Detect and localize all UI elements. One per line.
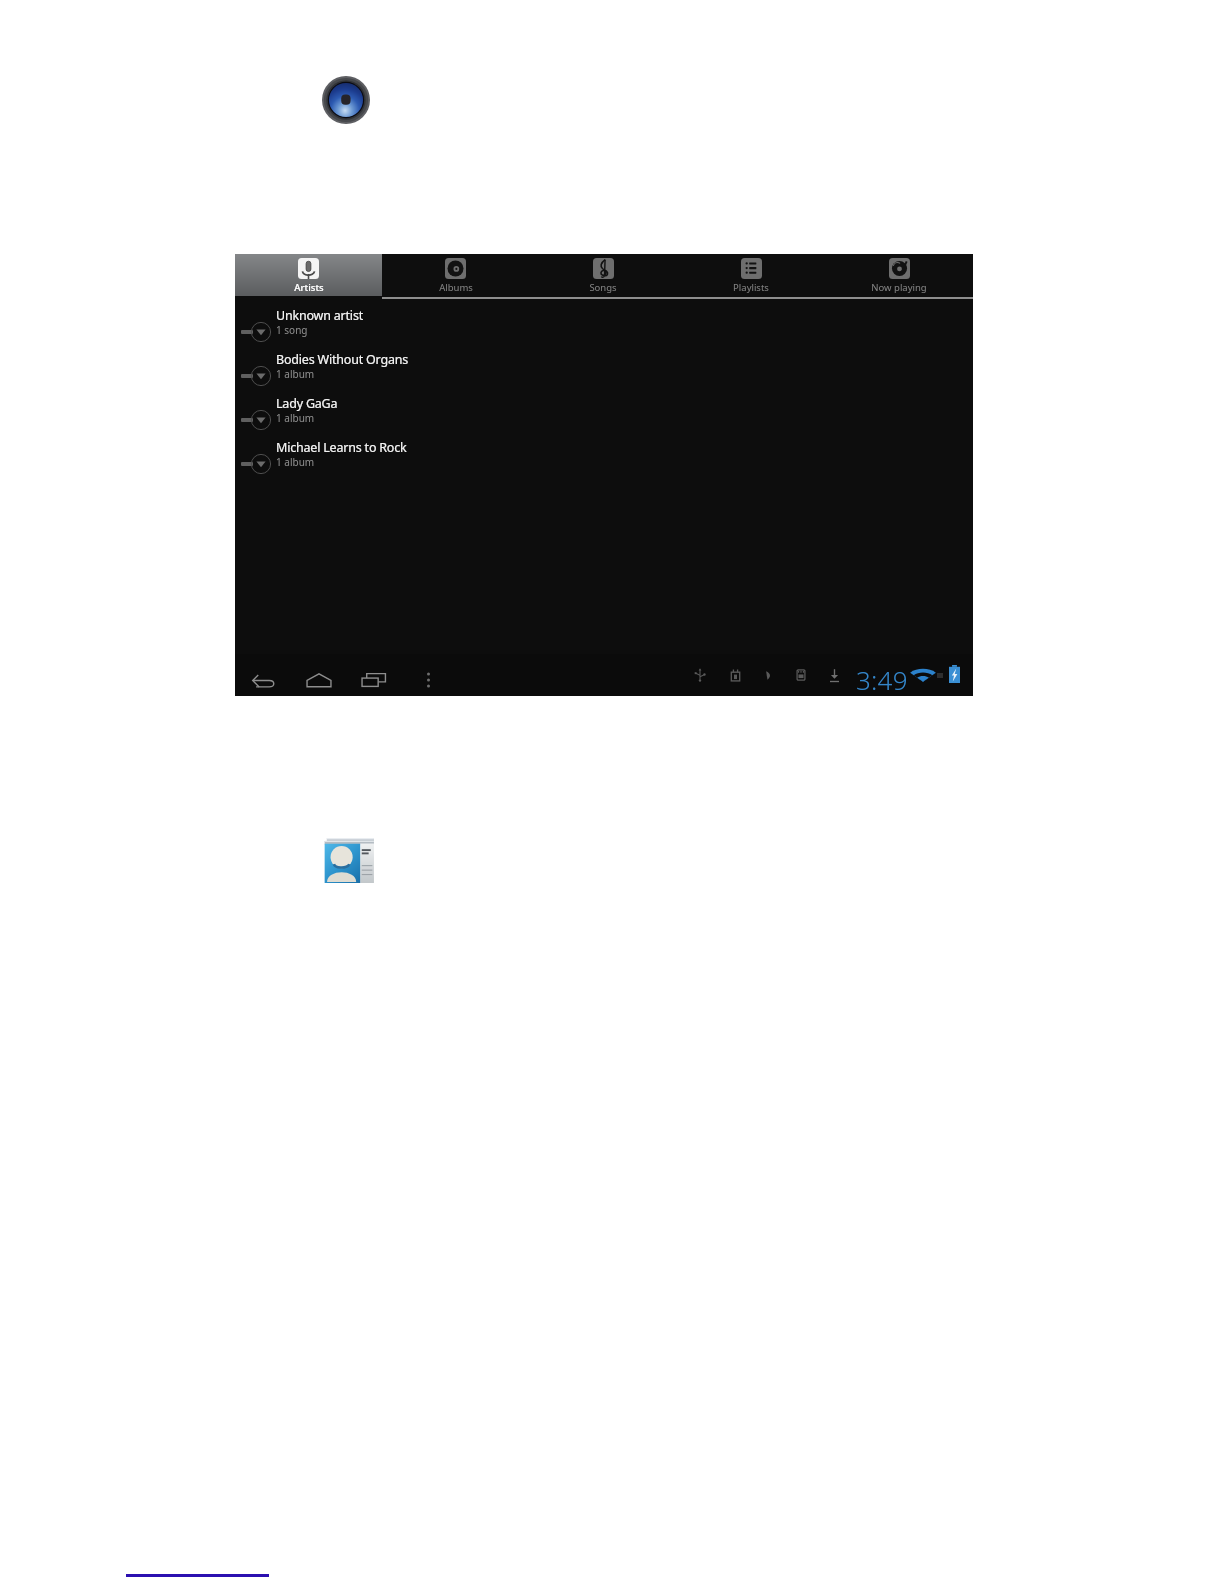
button[interactable]: Expand — [238, 364, 274, 388]
button[interactable]: Expand — [238, 408, 274, 432]
staticText: 1 album — [276, 455, 315, 469]
staticText: 1 album — [276, 411, 315, 425]
button[interactable]: Artists — [235, 254, 382, 296]
staticText: 3:49 — [856, 662, 908, 697]
staticText: Albums — [439, 281, 473, 294]
staticText: Playlists — [733, 281, 769, 294]
button[interactable]: Back — [252, 674, 276, 688]
staticText: 1 album — [276, 367, 315, 381]
button[interactable]: Recents — [361, 672, 387, 688]
staticText: Songs — [589, 281, 617, 294]
button[interactable]: Expand — [235, 428, 973, 472]
button[interactable]: Expand — [235, 340, 973, 384]
button[interactable]: Albums — [382, 254, 529, 296]
staticText: Michael Learns to Rock — [276, 439, 407, 456]
staticText: Lady GaGa — [276, 395, 338, 412]
staticText: Bodies Without Organs — [276, 351, 409, 368]
button[interactable]: Playlists — [677, 254, 825, 296]
button[interactable]: Home — [306, 673, 332, 688]
button[interactable]: Expand — [238, 320, 274, 344]
button[interactable]: Songs — [529, 254, 677, 296]
staticText: Artists — [294, 281, 324, 294]
button[interactable]: Contacts app icon — [322, 836, 375, 883]
button[interactable]: More options — [426, 672, 431, 688]
staticText: Now playing — [871, 281, 927, 294]
button[interactable]: Now playing — [825, 254, 973, 296]
button[interactable]: Expand — [238, 452, 274, 476]
staticText: 1 song — [276, 323, 308, 337]
button[interactable]: Expand — [235, 296, 973, 340]
staticText: Unknown artist — [276, 307, 363, 324]
button[interactable]: Expand — [235, 384, 973, 428]
button[interactable]: Music app icon — [322, 76, 370, 124]
